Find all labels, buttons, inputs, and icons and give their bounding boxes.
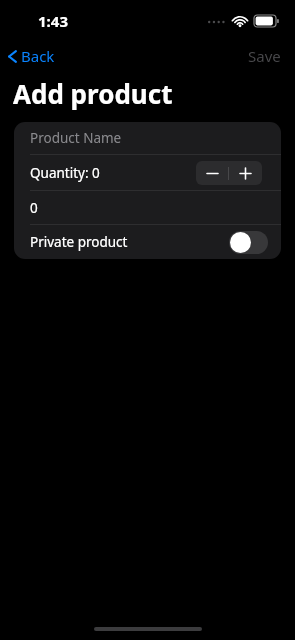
staticText: Back <box>21 46 55 66</box>
button[interactable]: Product Name <box>14 122 281 154</box>
button[interactable]: Increase quantity <box>229 161 262 185</box>
button[interactable]: Private product toggle <box>229 231 268 254</box>
staticText: Private product <box>30 233 128 251</box>
staticText: Quantity: 0 <box>30 164 100 182</box>
button[interactable]: Decrease quantity <box>196 161 228 185</box>
button[interactable]: Save <box>234 42 295 70</box>
button[interactable]: Back <box>0 43 65 69</box>
staticText: Product Name <box>30 129 122 147</box>
button[interactable]: 0 <box>14 191 281 224</box>
staticText: Save <box>248 46 281 66</box>
staticText: 1:43 <box>38 11 68 31</box>
staticText: 0 <box>30 199 38 217</box>
staticText: Add product <box>13 76 173 111</box>
